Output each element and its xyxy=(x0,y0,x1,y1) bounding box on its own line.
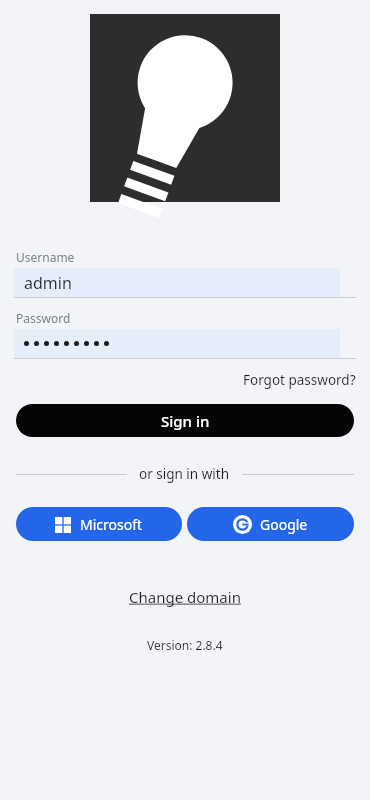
staticText: Forgot password? xyxy=(243,371,356,389)
button[interactable]: Google xyxy=(187,507,354,541)
button[interactable]: Microsoft xyxy=(16,507,182,541)
button[interactable]: Sign in xyxy=(16,404,354,437)
button[interactable]: Change domain xyxy=(119,585,251,609)
button[interactable]: Forgot password? xyxy=(229,369,370,391)
staticText: Password xyxy=(16,310,71,326)
staticText: admin xyxy=(24,272,72,294)
staticText: Sign in xyxy=(161,411,210,431)
staticText: Google xyxy=(260,515,308,534)
staticText: Version: 2.8.4 xyxy=(147,637,223,653)
other: Microsoft xyxy=(55,517,71,533)
staticText: Microsoft xyxy=(80,515,143,534)
button[interactable] xyxy=(14,329,340,358)
button[interactable]: admin xyxy=(14,268,340,297)
other: Google xyxy=(233,515,252,534)
staticText: or sign in with xyxy=(139,465,230,483)
staticText: Change domain xyxy=(129,587,241,607)
staticText: Username xyxy=(16,249,75,265)
